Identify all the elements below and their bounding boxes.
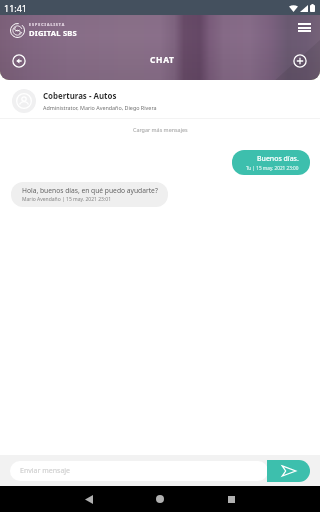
staticText: Administrator, Mario Avendaño, Diego Riv…: [43, 104, 157, 111]
button[interactable]: Cargar más mensajes: [133, 126, 188, 133]
button[interactable]: Menu: [298, 23, 311, 32]
button[interactable]: Back: [12, 54, 26, 68]
button[interactable]: Back: [80, 490, 98, 508]
button[interactable]: Enviar mensaje: [10, 461, 268, 481]
staticText: Hola, buenos días, en qué puedo ayudarte…: [22, 186, 158, 195]
staticText: Coberturas - Autos: [43, 91, 117, 102]
staticText: Buenos días.: [257, 154, 299, 164]
button[interactable]: Buenos días.: [232, 150, 310, 175]
button[interactable]: Coberturas - Autos: [0, 81, 320, 118]
staticText: Mario Avendaño | 15 may. 2021 23:01: [22, 196, 112, 203]
staticText: Tu | 15 may. 2021 23:00: [246, 165, 299, 171]
staticText: CHAT: [150, 54, 175, 65]
button[interactable]: Home: [151, 490, 169, 508]
button[interactable]: Send: [267, 460, 310, 482]
staticText: DIGITAL SBS: [29, 28, 77, 38]
button[interactable]: Add: [293, 54, 307, 68]
button[interactable]: Hola, buenos días, en qué puedo ayudarte…: [11, 182, 168, 207]
button[interactable]: Recents: [222, 490, 240, 508]
staticText: 11:41: [4, 2, 28, 14]
staticText: Enviar mensaje: [20, 466, 71, 476]
staticText: ESPECIALISTA: [29, 22, 66, 27]
